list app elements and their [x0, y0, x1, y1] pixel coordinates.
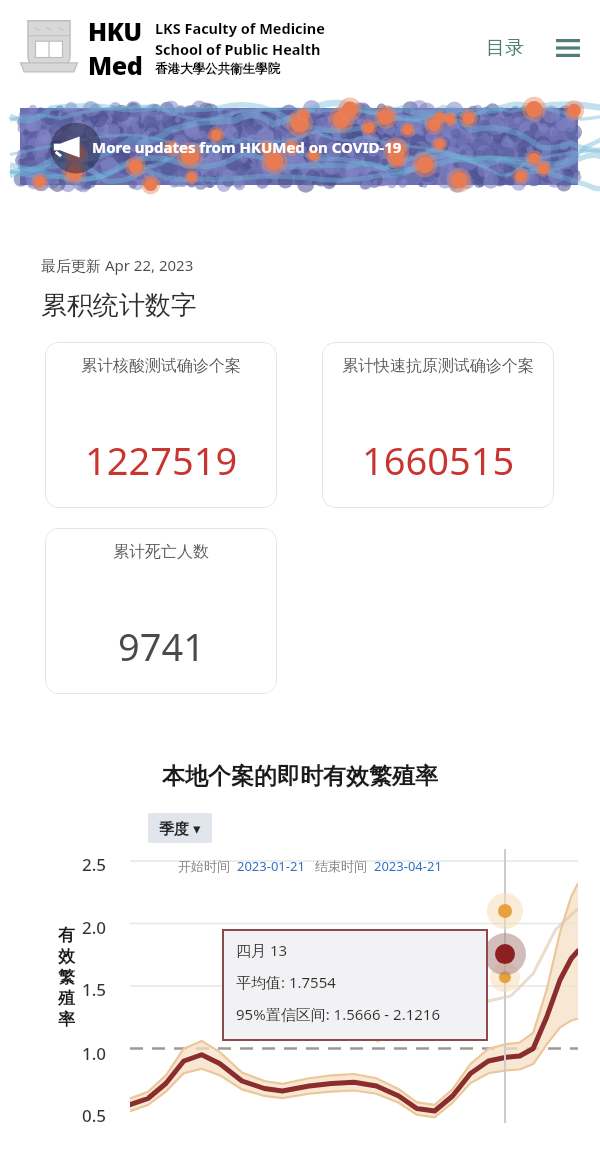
staticText: 开始时间	[178, 858, 230, 874]
staticText: 殖	[58, 988, 75, 1009]
staticText: 95%置信区间: 1.5666 - 2.1216	[236, 1004, 441, 1024]
staticText: 累计快速抗原测试确诊个案	[342, 356, 534, 376]
button[interactable]: 四月 13	[222, 929, 488, 1041]
staticText: 香港大學公共衞生學院	[155, 61, 280, 77]
staticText: 累计核酸测试确诊个案	[81, 356, 241, 376]
staticText: 2.0	[82, 916, 107, 939]
staticText: More updates from HKUMed on COVID-19	[92, 137, 402, 157]
staticText: 累积统计数字	[41, 289, 197, 322]
staticText: 9741	[118, 620, 205, 672]
staticText: HKU	[88, 14, 142, 48]
staticText: 结束时间	[315, 858, 367, 874]
staticText: 1227519	[85, 434, 238, 486]
staticText: 0.5	[82, 1104, 107, 1127]
staticText: 目录	[486, 36, 524, 60]
button[interactable]: 季度 ▾	[148, 813, 212, 843]
staticText: 季度 ▾	[159, 818, 201, 838]
staticText: 有	[58, 925, 75, 946]
button[interactable]: 累计快速抗原测试确诊个案	[322, 342, 554, 508]
staticText: 本地个案的即时有效繁殖率	[162, 762, 438, 791]
staticText: School of Public Health	[155, 39, 321, 59]
staticText: 四月 13	[236, 940, 288, 960]
staticText: 率	[58, 1009, 75, 1030]
staticText: 最后更新 Apr 22, 2023	[41, 255, 194, 275]
button[interactable]: Menu	[550, 30, 586, 66]
staticText: 累计死亡人数	[113, 542, 209, 562]
staticText: 1.5	[82, 978, 107, 1001]
staticText: 效	[58, 946, 75, 967]
button[interactable]: 2023-04-21	[374, 857, 442, 875]
button[interactable]: 2023-01-21	[237, 857, 305, 875]
button[interactable]: 累计核酸测试确诊个案	[45, 342, 277, 508]
staticText: 1660515	[362, 434, 515, 486]
staticText: Med	[88, 48, 143, 82]
staticText: 繁	[58, 967, 75, 988]
staticText: 平均值: 1.7554	[236, 972, 336, 992]
staticText: 1.0	[82, 1042, 107, 1065]
button[interactable]: 累计死亡人数	[45, 528, 277, 694]
button[interactable]: More updates from HKUMed on COVID-19	[20, 108, 578, 185]
staticText: LKS Faculty of Medicine	[155, 18, 325, 38]
button[interactable]: 目录	[480, 28, 530, 68]
staticText: 2.5	[82, 853, 107, 876]
